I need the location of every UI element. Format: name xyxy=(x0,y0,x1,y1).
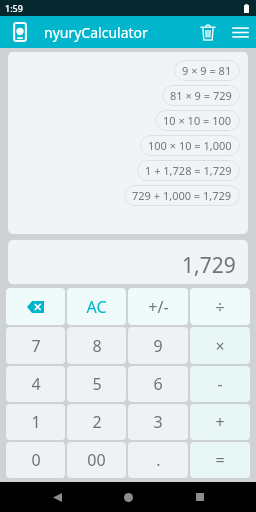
button[interactable]: . xyxy=(128,442,188,478)
staticText: × xyxy=(215,335,225,357)
button[interactable]: 00 xyxy=(67,442,126,478)
staticText: 7 xyxy=(31,335,41,357)
button[interactable]: 100 × 10 = 1,000 xyxy=(140,135,240,156)
staticText: 2 xyxy=(92,411,102,433)
button[interactable]: 9 × 9 = 81 xyxy=(174,60,240,81)
staticText: nyuryCalculator xyxy=(44,23,148,42)
button[interactable]: AC xyxy=(67,288,126,325)
button[interactable]: + xyxy=(190,404,250,440)
button[interactable]: × xyxy=(190,327,250,364)
staticText: 6 xyxy=(153,373,163,395)
staticText: 9 xyxy=(153,335,163,357)
button[interactable]: Back xyxy=(42,482,72,512)
staticText: 4 xyxy=(31,373,41,395)
staticText: 81 × 9 = 729 xyxy=(170,88,232,103)
staticText: 00 xyxy=(87,449,106,471)
staticText: 10 × 10 = 100 xyxy=(163,113,232,128)
staticText: 1 + 1,728 = 1,729 xyxy=(145,163,232,178)
staticText: 9 × 9 = 81 xyxy=(182,63,232,78)
staticText: 8 xyxy=(92,335,102,357)
button[interactable]: 729 + 1,000 = 1,729 xyxy=(124,185,240,206)
button[interactable]: = xyxy=(190,442,250,478)
button[interactable]: 10 × 10 = 100 xyxy=(155,110,240,131)
button[interactable]: 2 xyxy=(67,404,126,440)
button[interactable]: 3 xyxy=(128,404,188,440)
button[interactable]: Clear history xyxy=(192,16,224,48)
button[interactable]: App icon xyxy=(10,22,30,42)
button[interactable]: +/- xyxy=(128,288,188,325)
button[interactable]: - xyxy=(190,366,250,402)
button[interactable]: ÷ xyxy=(190,288,250,325)
staticText: 1 xyxy=(31,411,41,433)
button[interactable]: 81 × 9 = 729 xyxy=(162,85,240,106)
staticText: 100 × 10 = 1,000 xyxy=(148,138,232,153)
staticText: +/- xyxy=(148,296,169,318)
staticText: = xyxy=(215,449,225,471)
staticText: . xyxy=(156,449,161,471)
staticText: 3 xyxy=(153,411,163,433)
staticText: 1,729 xyxy=(182,251,236,280)
staticText: AC xyxy=(86,296,107,318)
staticText: 0 xyxy=(31,449,41,471)
button[interactable]: Home xyxy=(113,482,143,512)
staticText: 5 xyxy=(92,373,102,395)
button[interactable]: 5 xyxy=(67,366,126,402)
button[interactable]: 7 xyxy=(6,327,65,364)
button[interactable]: Menu xyxy=(224,16,256,48)
button[interactable]: 8 xyxy=(67,327,126,364)
button[interactable]: 6 xyxy=(128,366,188,402)
staticText: 729 + 1,000 = 1,729 xyxy=(132,188,232,203)
staticText: + xyxy=(215,411,225,433)
staticText: ÷ xyxy=(215,296,225,318)
button[interactable]: 9 xyxy=(128,327,188,364)
button[interactable]: Backspace xyxy=(6,288,65,325)
button[interactable]: 0 xyxy=(6,442,65,478)
button[interactable]: 1 xyxy=(6,404,65,440)
button[interactable]: Recents xyxy=(185,482,215,512)
staticText: - xyxy=(217,373,223,395)
button[interactable]: 1 + 1,728 = 1,729 xyxy=(137,160,240,181)
staticText: 1:59 xyxy=(5,2,23,14)
button[interactable]: 4 xyxy=(6,366,65,402)
